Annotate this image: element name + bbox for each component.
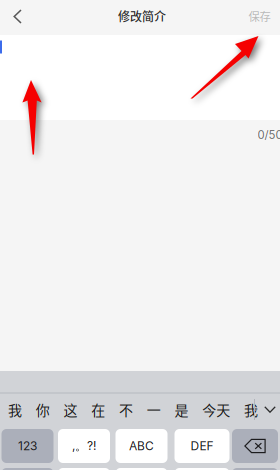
- staticText: 不: [119, 399, 133, 420]
- staticText: 这: [63, 399, 77, 420]
- staticText: 我: [244, 399, 258, 420]
- staticText: 修改简介: [118, 7, 166, 25]
- button[interactable]: Delete: [232, 429, 278, 463]
- button[interactable]: 我: [244, 399, 258, 420]
- button[interactable]: 123: [1, 429, 53, 463]
- button[interactable]: 是: [174, 399, 188, 420]
- staticText: 今天: [202, 399, 230, 420]
- button[interactable]: [232, 468, 278, 470]
- staticText: 123: [18, 439, 37, 453]
- staticText: ,。?!: [72, 438, 96, 454]
- staticText: 你: [36, 399, 50, 420]
- staticText: 在: [91, 399, 105, 420]
- button[interactable]: [115, 468, 167, 470]
- button[interactable]: DEF: [174, 429, 229, 463]
- button[interactable]: [1, 468, 53, 470]
- button[interactable]: ABC: [115, 429, 167, 463]
- staticText: ABC: [129, 439, 154, 453]
- button[interactable]: Back: [0, 0, 37, 33]
- button[interactable]: 保存: [237, 0, 280, 33]
- staticText: 我: [8, 399, 22, 420]
- staticText: 0/50: [257, 128, 280, 142]
- button[interactable]: 今天: [202, 399, 230, 420]
- staticText: 保存: [248, 8, 270, 24]
- button[interactable]: 你: [36, 399, 50, 420]
- button[interactable]: 一: [147, 399, 161, 420]
- button[interactable]: ,。?!: [58, 429, 110, 463]
- button[interactable]: 在: [91, 399, 105, 420]
- staticText: 一: [147, 399, 161, 420]
- staticText: DEF: [190, 439, 213, 453]
- button[interactable]: [58, 468, 110, 470]
- button[interactable]: 不: [119, 399, 133, 420]
- button[interactable]: 我: [8, 399, 22, 420]
- button[interactable]: Hide keyboard: [259, 396, 280, 422]
- button[interactable]: [174, 468, 229, 470]
- staticText: 是: [174, 399, 188, 420]
- button[interactable]: 这: [63, 399, 77, 420]
